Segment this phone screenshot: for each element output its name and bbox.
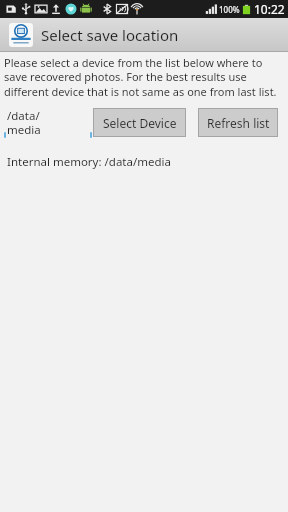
staticText: Internal memory: /data/media — [7, 154, 171, 170]
staticText: 10:22 — [254, 1, 285, 17]
staticText: Select save location — [41, 25, 179, 45]
button[interactable]: Refresh list — [198, 108, 278, 137]
staticText: /data/ media — [7, 108, 41, 137]
staticText: Select Device — [103, 115, 177, 131]
button[interactable]: Select Device — [93, 108, 186, 137]
staticText: Please select a device from the list bel… — [4, 55, 286, 100]
staticText: 100% — [219, 4, 240, 15]
staticText: Refresh list — [207, 115, 270, 131]
button[interactable]: /data/ media — [0, 106, 93, 138]
